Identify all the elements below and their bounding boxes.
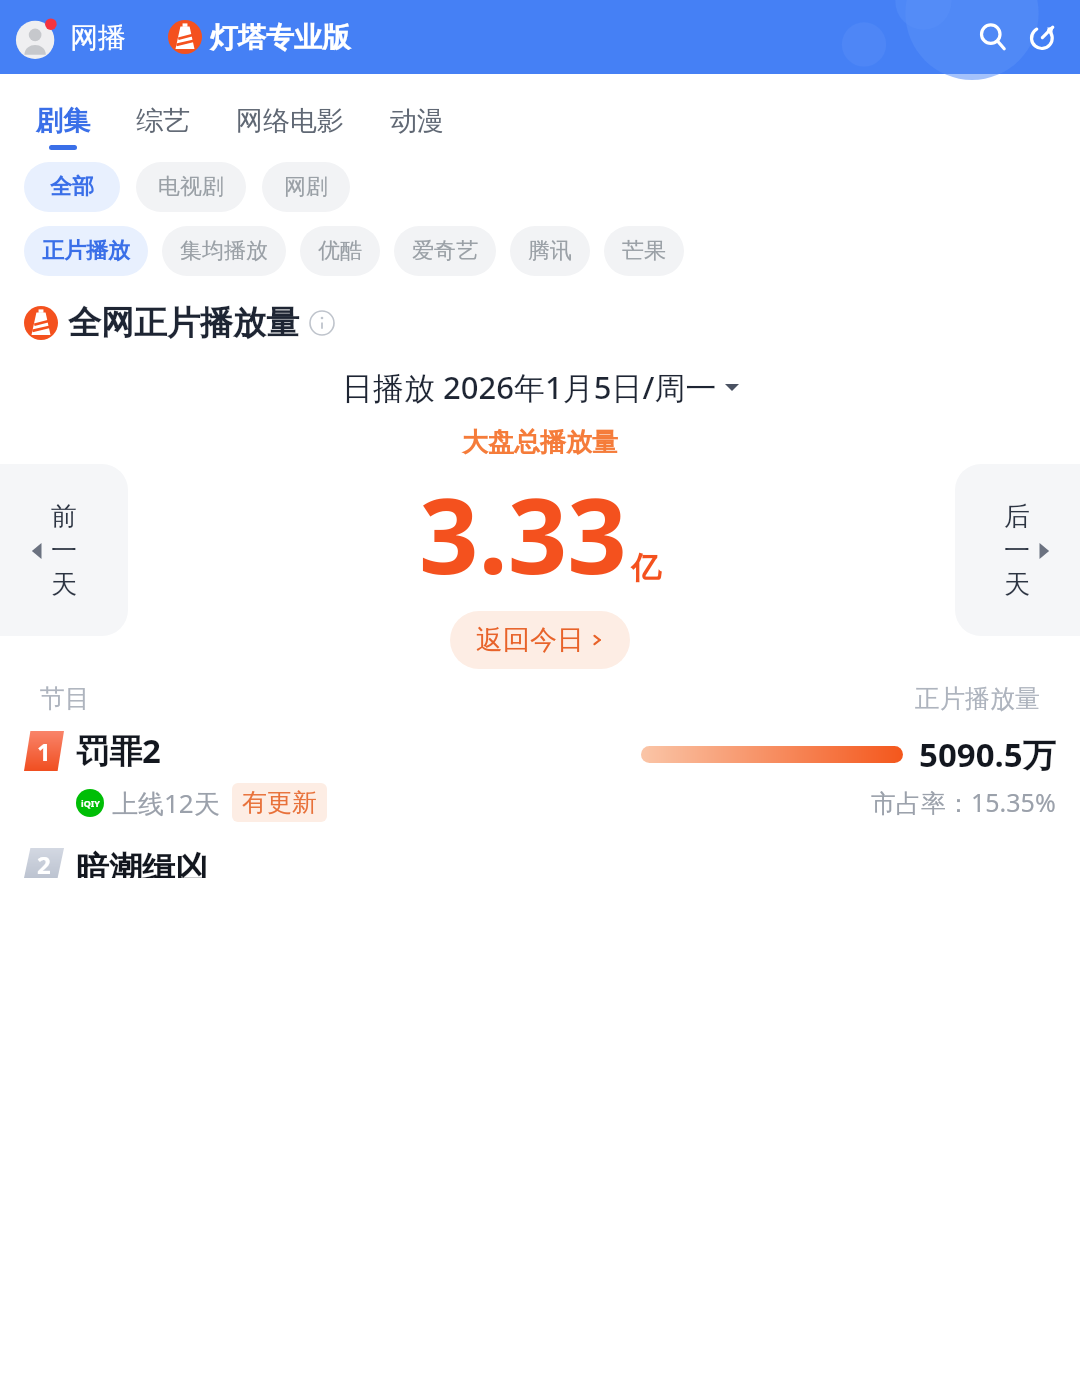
staticText: 亿	[631, 549, 661, 587]
staticText: 日播放 2026年1月5日/周一	[342, 366, 717, 408]
staticText: 2	[37, 848, 51, 878]
button[interactable]: 芒果	[604, 226, 684, 276]
button[interactable]: 后 一 天	[955, 464, 1080, 636]
button[interactable]: 1	[0, 728, 1080, 822]
staticText: 全部	[50, 173, 94, 201]
staticText: 网剧	[284, 173, 328, 201]
staticText: 电视剧	[158, 173, 224, 201]
button[interactable]: 网剧	[262, 162, 350, 212]
staticText: 节目	[40, 683, 90, 714]
button[interactable]: 集均播放	[162, 226, 286, 276]
staticText: 上线12天	[112, 785, 220, 821]
staticText: 灯塔专业版	[210, 20, 350, 55]
button[interactable]: 优酷	[300, 226, 380, 276]
staticText: 1	[37, 735, 51, 768]
staticText: 全网正片播放量	[68, 302, 299, 344]
staticText: 腾讯	[528, 237, 572, 265]
staticText: 集均播放	[180, 237, 268, 265]
staticText: 芒果	[622, 237, 666, 265]
staticText: 优酷	[318, 237, 362, 265]
button[interactable]: 前 一 天	[0, 464, 128, 636]
staticText: 5090.5万	[919, 732, 1056, 777]
staticText: 剧集	[36, 104, 90, 138]
button[interactable]: Share	[1020, 14, 1066, 60]
staticText: 大盘总播放量	[462, 426, 618, 459]
staticText: 爱奇艺	[412, 237, 478, 265]
staticText: 暗潮缉凶	[76, 848, 208, 878]
button[interactable]: Profile	[14, 13, 62, 61]
button[interactable]: 正片播放	[24, 226, 148, 276]
staticText: 前 一 天	[51, 500, 77, 601]
button[interactable]: 综艺	[124, 102, 202, 152]
staticText: 后 一 天	[1004, 500, 1030, 601]
staticText: 返回今日	[476, 623, 584, 657]
button[interactable]: 腾讯	[510, 226, 590, 276]
button[interactable]: Search	[970, 14, 1016, 60]
staticText: 动漫	[390, 104, 444, 138]
staticText: 网络电影	[236, 104, 344, 138]
button[interactable]: 2	[0, 832, 1080, 878]
staticText: 罚罪2	[76, 728, 161, 773]
button[interactable]: 日播放 2026年1月5日/周一	[336, 362, 745, 412]
button[interactable]: 返回今日	[450, 611, 630, 669]
button[interactable]: 电视剧	[136, 162, 246, 212]
staticText: 综艺	[136, 104, 190, 138]
staticText: iQIY	[81, 797, 100, 809]
button[interactable]: 网络电影	[224, 102, 356, 152]
staticText: 网播	[70, 20, 126, 55]
staticText: 市占率：15.35%	[871, 785, 1056, 819]
button[interactable]: 全网正片播放量	[24, 302, 335, 344]
button[interactable]: 剧集	[24, 102, 102, 152]
button[interactable]: 动漫	[378, 102, 456, 152]
staticText: 3.33	[419, 463, 627, 605]
other: Info	[309, 310, 335, 336]
button[interactable]: 爱奇艺	[394, 226, 496, 276]
staticText: 正片播放	[42, 237, 130, 265]
staticText: 有更新	[242, 787, 317, 818]
button[interactable]: 全部	[24, 162, 120, 212]
staticText: 正片播放量	[915, 683, 1040, 714]
